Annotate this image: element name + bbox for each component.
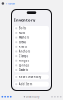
staticText: Hinges (19, 59, 29, 62)
button[interactable]: Screws (14, 40, 49, 44)
staticText: Add Item (19, 82, 32, 86)
staticText: Inventory (26, 95, 39, 98)
button[interactable]: Gaskets (14, 68, 49, 72)
button[interactable]: Springs (14, 63, 49, 68)
staticText: Springs (19, 64, 29, 67)
button[interactable]: Anchors (14, 49, 49, 54)
staticText: Reset Inventory (19, 75, 41, 79)
staticText: Clamps (19, 54, 28, 58)
staticText: Gaskets (19, 68, 28, 72)
staticText: Washers (19, 36, 29, 39)
staticText: Bolts (19, 26, 26, 30)
staticText: Nuts (19, 31, 25, 35)
button[interactable]: Clamps (14, 54, 49, 58)
button[interactable]: Reset Inventory (14, 75, 49, 79)
button[interactable]: Add Item (14, 82, 49, 87)
button[interactable]: Preview (6, 2, 15, 5)
staticText: Rivets (19, 45, 27, 49)
staticText: Preview (6, 2, 15, 5)
button[interactable]: Hinges (14, 58, 49, 63)
staticText: Anchors (19, 50, 30, 53)
button[interactable]: Nuts (14, 31, 49, 35)
button[interactable]: Washers (14, 35, 49, 40)
staticText: Inventory (14, 17, 35, 22)
button[interactable]: Stop preview (1, 2, 4, 5)
staticText: Screws (19, 40, 26, 44)
button[interactable]: Bolts (14, 26, 49, 31)
button[interactable]: Rivets (14, 44, 49, 49)
